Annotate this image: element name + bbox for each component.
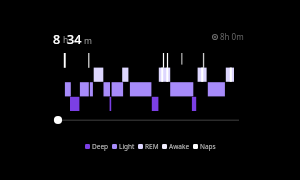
button[interactable]: REM (138, 142, 159, 151)
button[interactable]: 8 (52, 31, 94, 45)
staticText: 8 (53, 31, 61, 45)
staticText: Light (119, 142, 135, 151)
button[interactable]: Scrub timeline (50, 112, 66, 128)
staticText: Awake (169, 142, 190, 151)
button[interactable]: Deep (85, 142, 109, 151)
staticText: 8h 0m (220, 31, 244, 42)
button[interactable]: Awake (162, 142, 190, 151)
staticText: Naps (200, 142, 216, 151)
button[interactable]: Sleep goal 8 h 0 m (212, 31, 244, 42)
staticText: m (84, 35, 92, 47)
staticText: 34 (67, 31, 82, 45)
button[interactable]: Light (112, 142, 135, 151)
staticText: h (63, 34, 69, 46)
staticText: Deep (92, 142, 109, 151)
staticText: REM (145, 142, 159, 151)
button[interactable]: Naps (193, 142, 216, 151)
